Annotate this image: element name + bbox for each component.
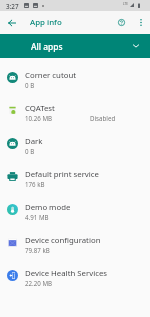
staticText: 22.20 MB [25, 279, 53, 287]
button[interactable]: Navigate up [3, 14, 21, 32]
button[interactable]: More options [133, 15, 148, 30]
staticText: Dark [25, 136, 43, 147]
button[interactable]: CQATest [0, 94, 150, 127]
staticText: App info [30, 17, 62, 28]
button[interactable]: Help [114, 15, 129, 30]
staticText: Demo mode [25, 202, 71, 213]
button[interactable]: Default print service [0, 160, 150, 193]
staticText: LTE [123, 2, 129, 6]
button[interactable]: Corner cutout [0, 61, 150, 94]
button[interactable]: Device Health Services [0, 259, 150, 292]
button[interactable]: Demo mode [0, 193, 150, 226]
staticText: 4.91 MB [25, 213, 49, 221]
staticText: Corner cutout [25, 70, 77, 81]
button[interactable]: Device configuration [0, 226, 150, 259]
staticText: All apps [31, 41, 63, 52]
staticText: Disabled [90, 114, 116, 122]
staticText: Device Health Services [25, 268, 108, 279]
staticText: Default print service [25, 169, 99, 180]
staticText: 0 B [25, 147, 35, 155]
staticText: 10.26 MB [25, 114, 53, 122]
staticText: 79.87 kB [25, 246, 50, 254]
button[interactable]: Dark [0, 127, 150, 160]
staticText: 176 kB [25, 180, 45, 188]
staticText: 3:27 [6, 2, 19, 11]
staticText: CQATest [25, 103, 55, 114]
button[interactable]: All apps [0, 34, 150, 58]
staticText: 0 B [25, 81, 35, 89]
staticText: Device configuration [25, 235, 101, 246]
